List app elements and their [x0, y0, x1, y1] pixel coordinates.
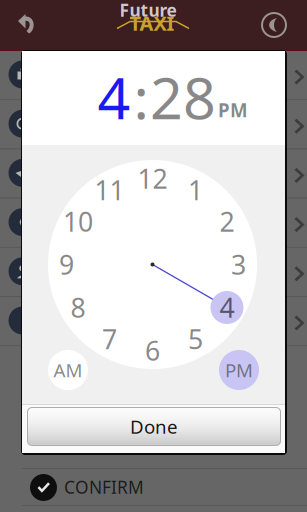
button[interactable]: 8	[61, 291, 94, 324]
staticText: :	[133, 59, 148, 135]
button[interactable]: PM	[213, 99, 253, 121]
staticText: 4	[219, 290, 234, 325]
staticText: 10	[63, 204, 93, 239]
staticText: 11	[94, 172, 124, 208]
button[interactable]: Call	[252, 0, 296, 50]
button[interactable]: 12	[136, 162, 169, 195]
button[interactable]: 1	[179, 173, 212, 206]
staticText: 5	[188, 321, 203, 357]
button[interactable]: 5	[179, 322, 212, 355]
button[interactable]: 28	[138, 66, 228, 128]
staticText: 9	[59, 247, 74, 282]
staticText: CONFIRM	[64, 475, 144, 498]
button[interactable]: AM	[48, 350, 88, 390]
staticText: AM	[53, 358, 82, 382]
button[interactable]: 9	[50, 248, 83, 281]
button[interactable]: 4	[97, 66, 131, 128]
staticText: TAXI	[129, 10, 174, 36]
staticText: Future	[119, 0, 176, 21]
button[interactable]: 3	[222, 248, 255, 281]
staticText: 3	[231, 247, 246, 282]
staticText: 2	[219, 204, 234, 239]
button[interactable]: CONFIRM	[22, 469, 307, 505]
button[interactable]: 10	[61, 205, 94, 238]
staticText: 7	[102, 321, 117, 357]
staticText: 12	[137, 161, 167, 196]
button[interactable]: 6	[136, 334, 169, 367]
staticText: 8	[70, 290, 85, 325]
staticText: Done	[130, 414, 178, 439]
button[interactable]: 2	[210, 205, 243, 238]
staticText: PM	[218, 98, 248, 122]
button[interactable]: Done	[27, 407, 281, 446]
staticText: 4	[97, 59, 130, 135]
staticText: 6	[145, 333, 160, 368]
staticText: PM	[225, 358, 253, 382]
button[interactable]: 4	[210, 291, 243, 324]
staticText: 28	[150, 59, 216, 135]
staticText: 1	[188, 172, 203, 208]
button[interactable]: Back	[0, 0, 48, 50]
button[interactable]: 7	[93, 322, 126, 355]
button[interactable]: PM	[219, 350, 259, 390]
button[interactable]: 11	[93, 173, 126, 206]
